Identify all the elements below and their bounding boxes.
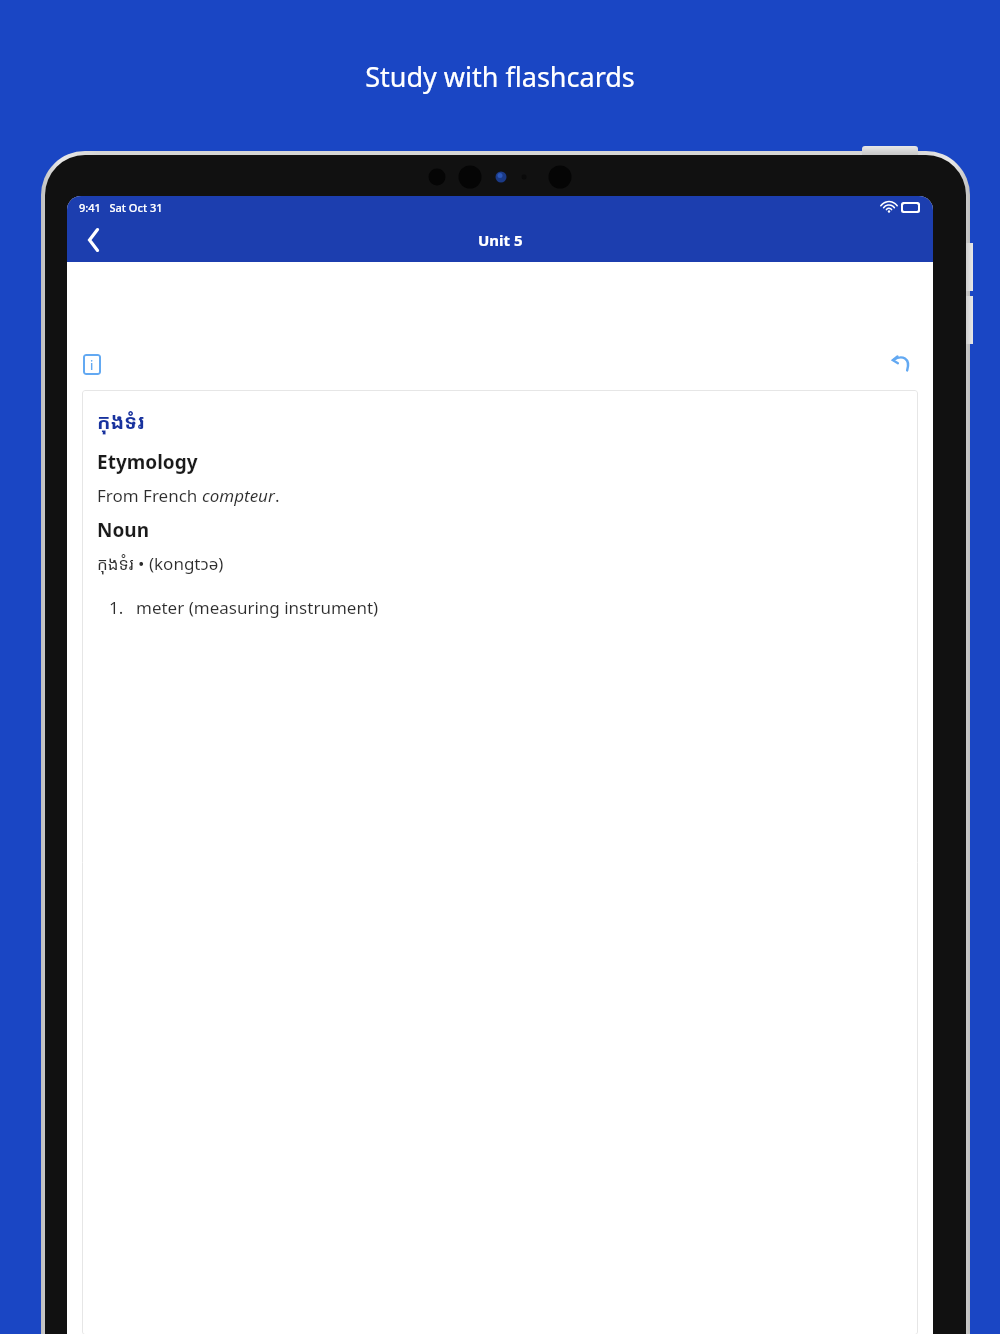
button[interactable]: កុងទំរ <box>82 390 918 1334</box>
staticText: Noun <box>97 517 150 543</box>
button[interactable]: Undo <box>886 350 916 378</box>
staticText: 1. <box>109 596 124 619</box>
staticText: Study with flashcards <box>0 58 1000 95</box>
staticText: កុងទំរ <box>97 408 145 435</box>
staticText: i <box>90 357 94 373</box>
staticText: Etymology <box>97 449 198 475</box>
staticText: compteur <box>202 484 275 507</box>
staticText: From French <box>97 484 202 507</box>
staticText: កុងទំរ • (kongtɔə) <box>97 552 224 575</box>
button[interactable]: Back <box>67 218 121 262</box>
staticText: 9:41 Sat Oct 31 <box>79 200 163 215</box>
button[interactable]: Information <box>81 352 103 376</box>
staticText: Unit 5 <box>478 230 523 250</box>
staticText: meter (measuring instrument) <box>136 596 379 619</box>
staticText: . <box>275 484 280 507</box>
